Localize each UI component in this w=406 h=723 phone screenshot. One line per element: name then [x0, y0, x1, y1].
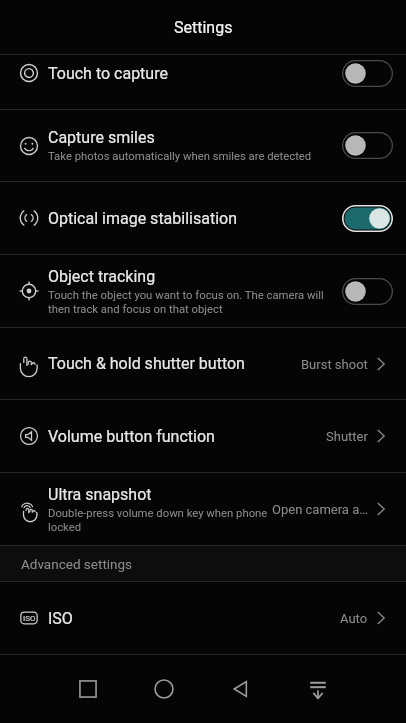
- button[interactable]: Home: [141, 666, 187, 712]
- staticText: Double-press volume down key when phone …: [48, 507, 270, 533]
- staticText: Touch to capture: [48, 64, 168, 83]
- button[interactable]: [342, 205, 393, 232]
- button[interactable]: Hide keyboard: [295, 666, 341, 712]
- button[interactable]: [342, 60, 393, 87]
- staticText: Capture smiles: [48, 128, 155, 147]
- staticText: Take photos automatically when smiles ar…: [48, 150, 312, 163]
- button[interactable]: [342, 132, 393, 159]
- staticText: Auto: [340, 611, 368, 626]
- staticText: Volume button function: [48, 427, 215, 446]
- staticText: Advanced settings: [21, 556, 133, 572]
- staticText: Optical image stabilisation: [48, 209, 238, 228]
- staticText: Touch & hold shutter button: [48, 354, 245, 373]
- staticText: Object tracking: [48, 267, 156, 286]
- button[interactable]: Capture smiles: [0, 110, 406, 181]
- staticText: Open camera a…: [272, 502, 368, 517]
- button[interactable]: Optical image stabilisation: [0, 182, 406, 254]
- button[interactable]: Touch & hold shutter button: [0, 328, 406, 399]
- staticText: Settings: [174, 18, 233, 37]
- button[interactable]: Back: [218, 666, 264, 712]
- button[interactable]: ISO: [0, 582, 406, 654]
- staticText: ISO: [23, 614, 36, 623]
- staticText: Burst shoot: [301, 357, 368, 372]
- button[interactable]: Touch to capture: [0, 55, 406, 91]
- staticText: Shutter: [326, 429, 368, 444]
- staticText: Touch the object you want to focus on. T…: [48, 289, 340, 315]
- button[interactable]: Volume button function: [0, 400, 406, 472]
- button[interactable]: Recent apps: [65, 666, 111, 712]
- button[interactable]: [342, 278, 393, 305]
- staticText: ISO: [48, 609, 73, 628]
- button[interactable]: Object tracking: [0, 255, 406, 327]
- staticText: Ultra snapshot: [48, 485, 152, 504]
- button[interactable]: Ultra snapshot: [0, 473, 406, 545]
